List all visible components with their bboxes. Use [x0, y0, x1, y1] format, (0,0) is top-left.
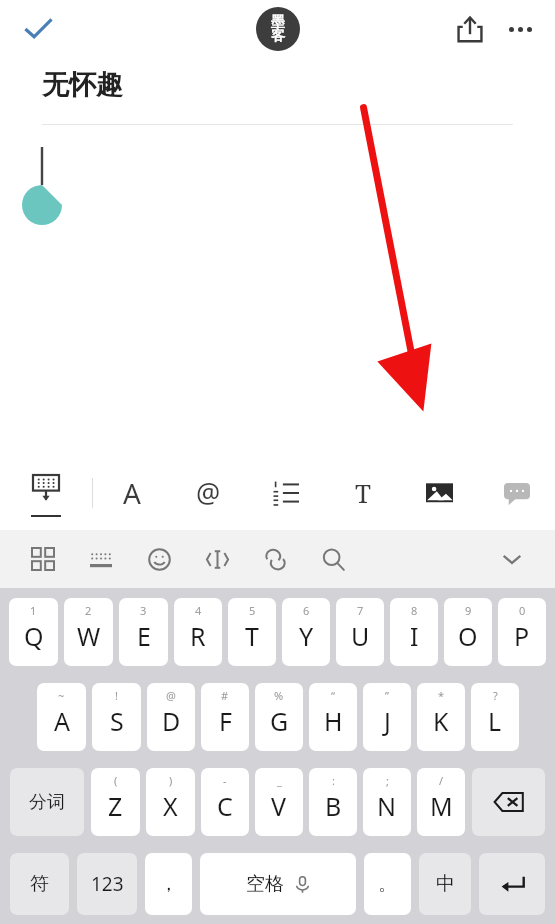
button[interactable]: ” [363, 683, 411, 751]
button[interactable]: / [417, 768, 465, 836]
staticText: C [217, 789, 233, 823]
staticText: 。 [378, 872, 397, 896]
button[interactable]: 5 [228, 598, 276, 666]
button[interactable]: 2 [64, 598, 113, 666]
button[interactable]: Numbered list [247, 455, 324, 530]
staticText: K [433, 704, 449, 738]
staticText: U [351, 619, 370, 653]
staticText: / [439, 773, 444, 788]
staticText: H [324, 704, 343, 738]
button[interactable]: 空格 [200, 853, 356, 915]
staticText: 5 [249, 603, 256, 618]
button[interactable]: ? [471, 683, 519, 751]
button[interactable]: * [417, 683, 465, 751]
staticText: 墨 客 [271, 13, 285, 45]
staticText: @ [196, 474, 221, 511]
button[interactable]: Cursor control [188, 530, 246, 588]
staticText: A [123, 474, 141, 512]
button[interactable]: ( [91, 768, 140, 836]
button[interactable]: _ [255, 768, 303, 836]
button[interactable]: 分词 [10, 768, 84, 836]
button[interactable]: 墨 客 [256, 7, 300, 51]
staticText: * [438, 688, 445, 703]
staticText: Y [299, 619, 314, 653]
button[interactable]: @ [147, 683, 195, 751]
staticText: 6 [303, 603, 310, 618]
staticText: Q [24, 619, 44, 653]
button[interactable]: % [255, 683, 303, 751]
button[interactable]: 3 [119, 598, 168, 666]
staticText: A [54, 704, 70, 738]
button[interactable]: Collapse keyboard [483, 530, 541, 588]
button[interactable]: 7 [336, 598, 384, 666]
staticText: F [219, 704, 232, 738]
button[interactable]: Insert image [401, 455, 478, 530]
button[interactable]: Backspace [472, 768, 545, 836]
button[interactable]: 8 [390, 598, 438, 666]
button[interactable]: Comment [478, 455, 555, 530]
button[interactable]: Done [12, 3, 64, 55]
button[interactable]: 0 [498, 598, 546, 666]
button[interactable]: Search [304, 530, 362, 588]
staticText: 空格 [246, 872, 284, 896]
staticText: I [410, 619, 419, 653]
staticText: R [190, 619, 206, 653]
button[interactable]: 4 [174, 598, 222, 666]
button[interactable]: Enter [479, 853, 545, 915]
staticText: 分词 [29, 791, 65, 814]
button[interactable]: 6 [282, 598, 330, 666]
staticText: 1 [30, 603, 37, 618]
staticText: L [488, 704, 502, 738]
staticText: W [77, 619, 101, 653]
button[interactable]: - [201, 768, 249, 836]
staticText: ? [493, 688, 498, 703]
button[interactable]: 。 [364, 853, 411, 915]
staticText: 符 [30, 872, 49, 896]
button[interactable]: ; [363, 768, 411, 836]
staticText: _ [277, 773, 282, 788]
button[interactable]: @ [170, 455, 247, 530]
staticText: S [110, 704, 124, 738]
staticText: V [271, 789, 287, 823]
button[interactable]: : [309, 768, 357, 836]
button[interactable]: Share [445, 4, 495, 54]
button[interactable]: 中 [419, 853, 471, 915]
button[interactable]: Emoji [130, 530, 188, 588]
staticText: X [163, 789, 178, 823]
staticText: T [355, 475, 371, 510]
button[interactable]: 符 [10, 853, 69, 915]
staticText: E [137, 619, 151, 653]
button[interactable]: ， [145, 853, 192, 915]
staticText: 无怀趣 [42, 68, 123, 102]
button[interactable]: 9 [444, 598, 492, 666]
button[interactable]: Apps [14, 530, 72, 588]
staticText: D [162, 704, 181, 738]
staticText: 123 [91, 871, 124, 897]
staticText: M [430, 789, 453, 823]
staticText: “ [331, 688, 335, 703]
staticText: 0 [519, 603, 526, 618]
staticText: ) [169, 773, 173, 788]
staticText: B [325, 789, 342, 823]
button[interactable]: ! [92, 683, 141, 751]
button[interactable]: # [201, 683, 249, 751]
staticText: T [245, 619, 259, 653]
button[interactable]: More options [495, 4, 545, 54]
button[interactable]: Hide keyboard [0, 455, 92, 530]
staticText: O [458, 619, 478, 653]
staticText: P [514, 619, 530, 653]
button[interactable]: Clipboard [246, 530, 304, 588]
staticText: 7 [357, 603, 364, 618]
button[interactable]: ) [146, 768, 195, 836]
staticText: 2 [85, 603, 92, 618]
button[interactable]: 1 [9, 598, 58, 666]
staticText: ， [159, 872, 178, 896]
button[interactable]: T [324, 455, 401, 530]
button[interactable]: ~ [37, 683, 86, 751]
button[interactable]: A [93, 455, 170, 530]
button[interactable]: Keyboard layout [72, 530, 130, 588]
button[interactable]: “ [309, 683, 357, 751]
button[interactable]: 123 [77, 853, 137, 915]
staticText: ! [115, 688, 118, 703]
staticText: % [274, 688, 284, 703]
